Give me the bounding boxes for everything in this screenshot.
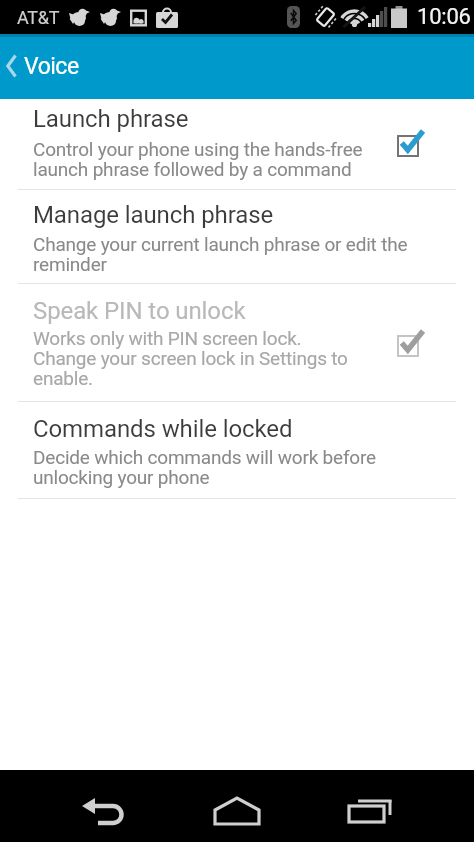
staticText: Launch phrase — [33, 105, 189, 133]
staticText: Commands while locked — [33, 415, 293, 443]
staticText: Manage launch phrase — [33, 201, 274, 229]
staticText: Change your current launch phrase or edi… — [33, 233, 408, 275]
staticText: AT&T — [17, 7, 60, 28]
button[interactable] — [213, 787, 261, 835]
staticText: 10:06 — [417, 4, 471, 30]
button[interactable]: Launch phrase — [0, 99, 474, 189]
button[interactable] — [80, 787, 128, 835]
staticText: Speak PIN to unlock — [33, 297, 246, 325]
button[interactable]: Manage launch phrase — [0, 190, 474, 283]
button[interactable]: Commands while locked — [0, 402, 474, 498]
staticText: Works only with PIN screen lock. Change … — [33, 327, 348, 389]
staticText: Control your phone using the hands-free … — [33, 138, 363, 180]
button[interactable] — [346, 787, 394, 835]
staticText: Decide which commands will work before u… — [33, 446, 376, 488]
button[interactable]: Speak PIN to unlock — [0, 284, 474, 401]
staticText: Voice — [24, 53, 79, 80]
button[interactable]: Voice — [0, 35, 474, 97]
